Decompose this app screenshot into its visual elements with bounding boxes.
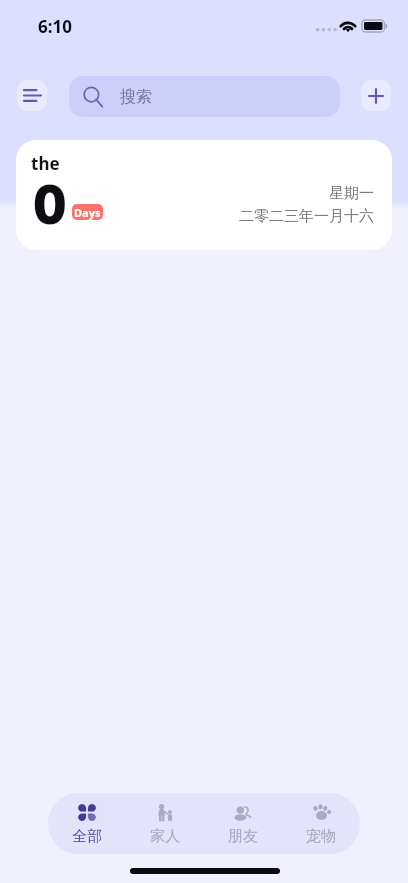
button[interactable]: 全部 <box>48 793 126 854</box>
staticText: 0 <box>33 168 67 238</box>
staticText: 全部 <box>72 827 102 846</box>
staticText: 搜索 <box>120 87 152 107</box>
staticText: 二零二三年一月十六 <box>239 207 374 226</box>
button[interactable]: 朋友 <box>204 793 282 854</box>
button[interactable]: the <box>16 140 392 250</box>
button[interactable]: Add <box>361 80 391 111</box>
staticText: 宠物 <box>306 827 336 846</box>
staticText: the <box>31 152 60 175</box>
button[interactable]: Menu <box>17 80 47 111</box>
button[interactable]: 搜索 <box>69 76 340 117</box>
staticText: 朋友 <box>228 827 258 846</box>
staticText: 星期一 <box>329 184 374 203</box>
staticText: 6:10 <box>38 15 72 38</box>
staticText: 家人 <box>150 827 180 846</box>
button[interactable]: 家人 <box>126 793 204 854</box>
button[interactable]: 宠物 <box>282 793 360 854</box>
staticText: Days <box>74 205 101 220</box>
